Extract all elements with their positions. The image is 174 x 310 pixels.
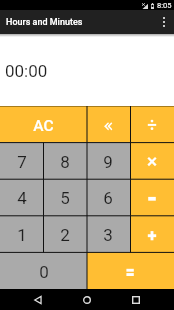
button[interactable]: Divide	[130, 106, 174, 142]
button[interactable]: Equals	[87, 252, 174, 289]
staticText: Hours and Minutes	[6, 17, 83, 28]
button[interactable]: 2	[43, 215, 86, 252]
button[interactable]: Home	[77, 290, 97, 310]
button[interactable]: 9	[86, 142, 130, 178]
staticText: 6	[103, 188, 113, 208]
button[interactable]: Backspace	[86, 106, 130, 142]
staticText: 1	[17, 225, 27, 245]
button[interactable]: 7	[0, 142, 43, 178]
button[interactable]: 8	[43, 142, 86, 178]
button[interactable]: 0	[0, 252, 87, 289]
staticText: 8:05	[157, 1, 172, 10]
button[interactable]: Add	[130, 215, 174, 252]
staticText: 00:00	[5, 61, 48, 81]
button[interactable]: Multiply	[130, 142, 174, 178]
button[interactable]: 6	[86, 178, 130, 215]
button[interactable]: 4	[0, 178, 43, 215]
button[interactable]: 3	[86, 215, 130, 252]
button[interactable]: 5	[43, 178, 86, 215]
staticText: 2	[60, 225, 70, 245]
staticText: 7	[17, 152, 27, 172]
staticText: 5	[60, 188, 70, 208]
staticText: AC	[33, 117, 54, 135]
staticText: 0	[39, 262, 49, 282]
button[interactable]: Back	[28, 290, 48, 310]
button[interactable]: 1	[0, 215, 43, 252]
staticText: 8	[60, 152, 70, 172]
button[interactable]: Recents	[126, 290, 146, 310]
button[interactable]: More options	[154, 10, 174, 34]
staticText: 3	[103, 225, 113, 245]
staticText: 9	[103, 152, 113, 172]
staticText: 4	[17, 188, 27, 208]
button[interactable]: Subtract	[130, 178, 174, 215]
button[interactable]: AC	[0, 106, 86, 142]
